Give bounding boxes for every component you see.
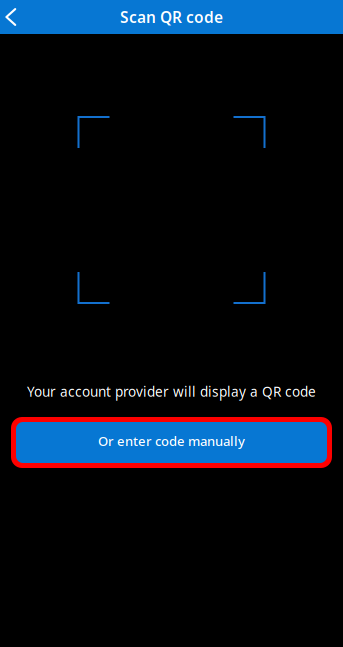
button[interactable]: Back [0,0,29,34]
staticText: Your account provider will display a QR … [27,382,316,401]
staticText: Scan QR code [120,6,223,28]
button[interactable]: Or enter code manually [11,417,332,468]
staticText: Or enter code manually [98,432,245,450]
